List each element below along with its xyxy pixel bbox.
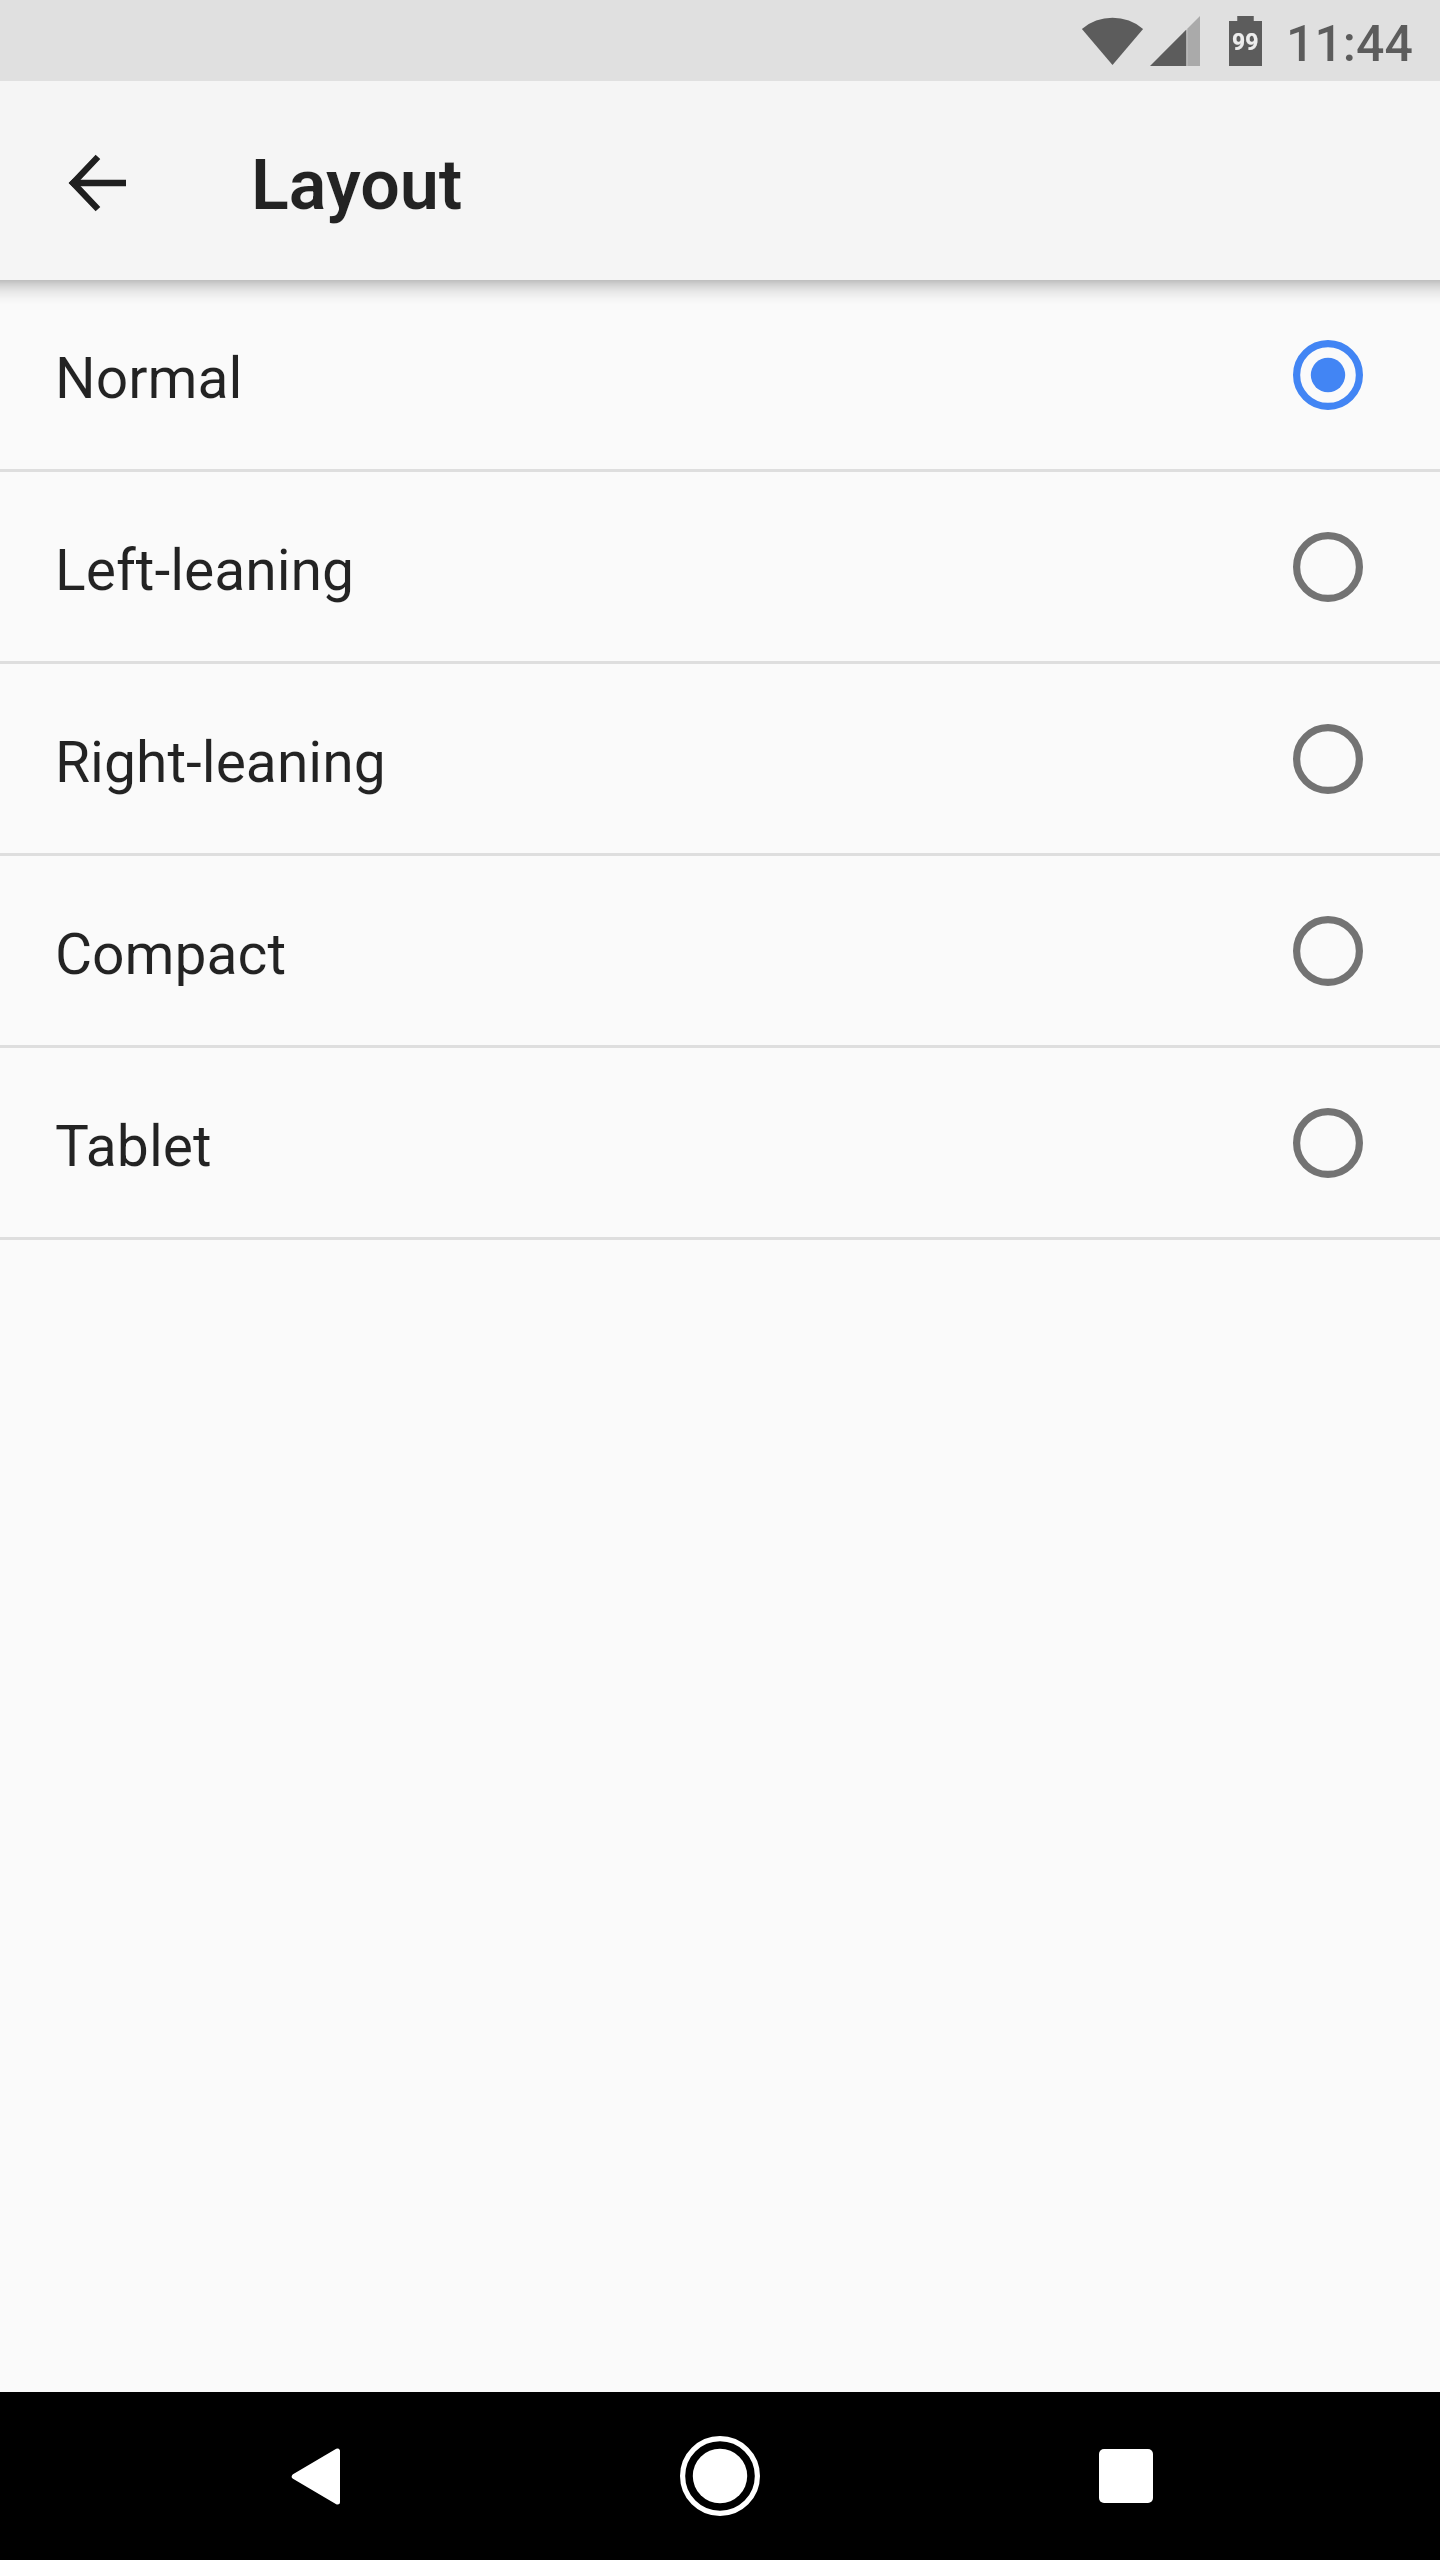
staticText: Layout bbox=[251, 144, 463, 226]
button[interactable]: Compact bbox=[0, 856, 1440, 1045]
staticText: Left-leaning bbox=[55, 537, 355, 604]
button[interactable]: Left-leaning bbox=[0, 472, 1440, 661]
button[interactable]: Tablet bbox=[0, 1048, 1440, 1237]
staticText: 11:44 bbox=[1286, 15, 1413, 74]
staticText: Normal bbox=[55, 345, 243, 412]
button[interactable]: Recent apps bbox=[1054, 2392, 1198, 2560]
button[interactable]: Right-leaning bbox=[0, 664, 1440, 853]
button[interactable]: Back bbox=[243, 2392, 387, 2560]
staticText: Compact bbox=[55, 921, 287, 988]
button[interactable]: Home bbox=[648, 2392, 792, 2560]
staticText: Right-leaning bbox=[55, 729, 386, 796]
staticText: Tablet bbox=[55, 1113, 212, 1180]
staticText: 99 bbox=[1232, 29, 1259, 56]
button[interactable]: Navigate up bbox=[26, 111, 170, 255]
button[interactable]: Normal bbox=[0, 280, 1440, 469]
